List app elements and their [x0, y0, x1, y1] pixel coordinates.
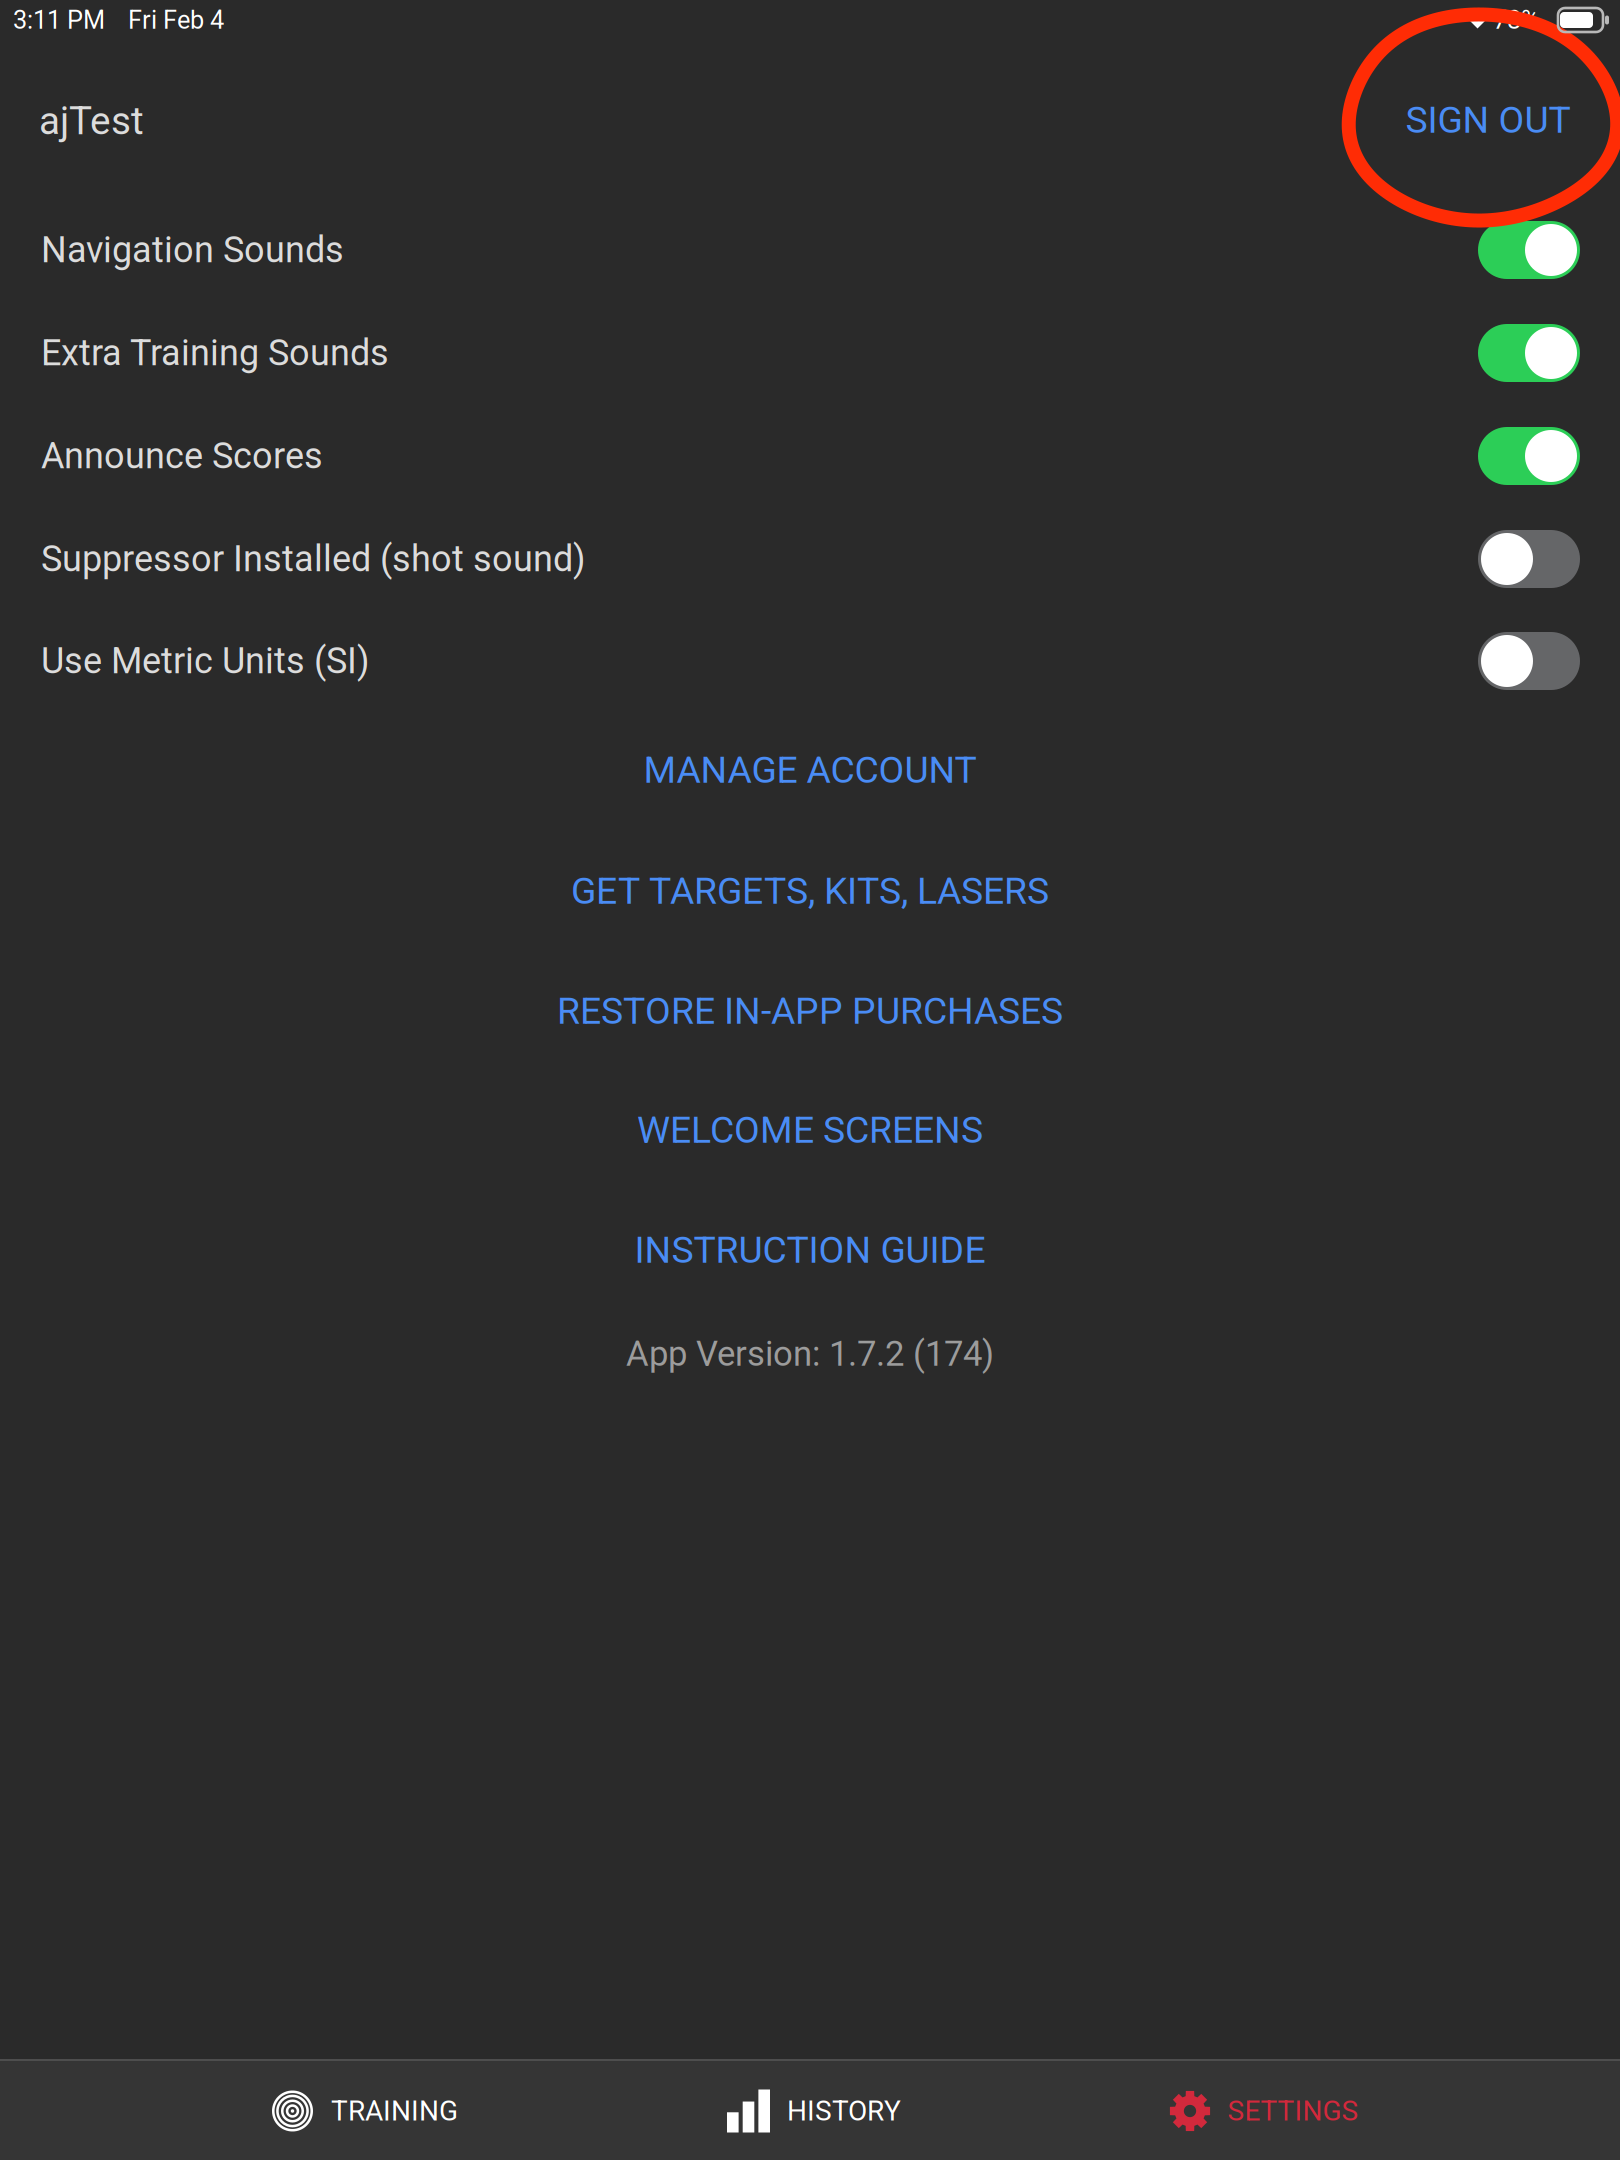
button[interactable]: SIGN OUT — [1358, 74, 1618, 166]
staticText: 3:11 PM — [13, 5, 105, 35]
button[interactable]: HISTORY — [544, 2061, 1084, 2160]
staticText: GET TARGETS, KITS, LASERS — [571, 869, 1049, 913]
button[interactable]: RESTORE IN-APP PURCHASES — [260, 965, 1360, 1057]
staticText: Extra Training Sounds — [41, 332, 389, 374]
button[interactable]: Extra Training Sounds — [0, 302, 1620, 404]
staticText: TRAINING — [331, 2095, 458, 2127]
staticText: RESTORE IN-APP PURCHASES — [557, 989, 1063, 1033]
button[interactable]: SETTINGS — [994, 2061, 1534, 2160]
staticText: Suppressor Installed (shot sound) — [41, 538, 586, 580]
button[interactable]: WELCOME SCREENS — [260, 1084, 1360, 1176]
button[interactable]: Navigation Sounds — [0, 199, 1620, 301]
staticText: MANAGE ACCOUNT — [643, 748, 976, 792]
staticText: HISTORY — [787, 2095, 901, 2127]
staticText: INSTRUCTION GUIDE — [634, 1228, 985, 1272]
staticText: 78% — [1493, 5, 1540, 35]
staticText: WELCOME SCREENS — [637, 1108, 983, 1152]
button[interactable]: GET TARGETS, KITS, LASERS — [260, 845, 1360, 937]
staticText: SETTINGS — [1227, 2095, 1358, 2127]
staticText: App Version: 1.7.2 (174) — [626, 1334, 994, 1374]
staticText: SIGN OUT — [1405, 98, 1570, 142]
staticText: Navigation Sounds — [41, 229, 344, 271]
staticText: Fri Feb 4 — [128, 5, 224, 35]
staticText: ajTest — [39, 98, 144, 144]
button[interactable]: Use Metric Units (SI) — [0, 610, 1620, 712]
staticText: Announce Scores — [41, 435, 323, 477]
staticText: Use Metric Units (SI) — [41, 640, 370, 682]
button[interactable]: MANAGE ACCOUNT — [260, 724, 1360, 816]
button[interactable]: Announce Scores — [0, 405, 1620, 507]
button[interactable]: INSTRUCTION GUIDE — [260, 1204, 1360, 1296]
button[interactable]: Suppressor Installed (shot sound) — [0, 508, 1620, 610]
button[interactable]: TRAINING — [95, 2061, 635, 2160]
